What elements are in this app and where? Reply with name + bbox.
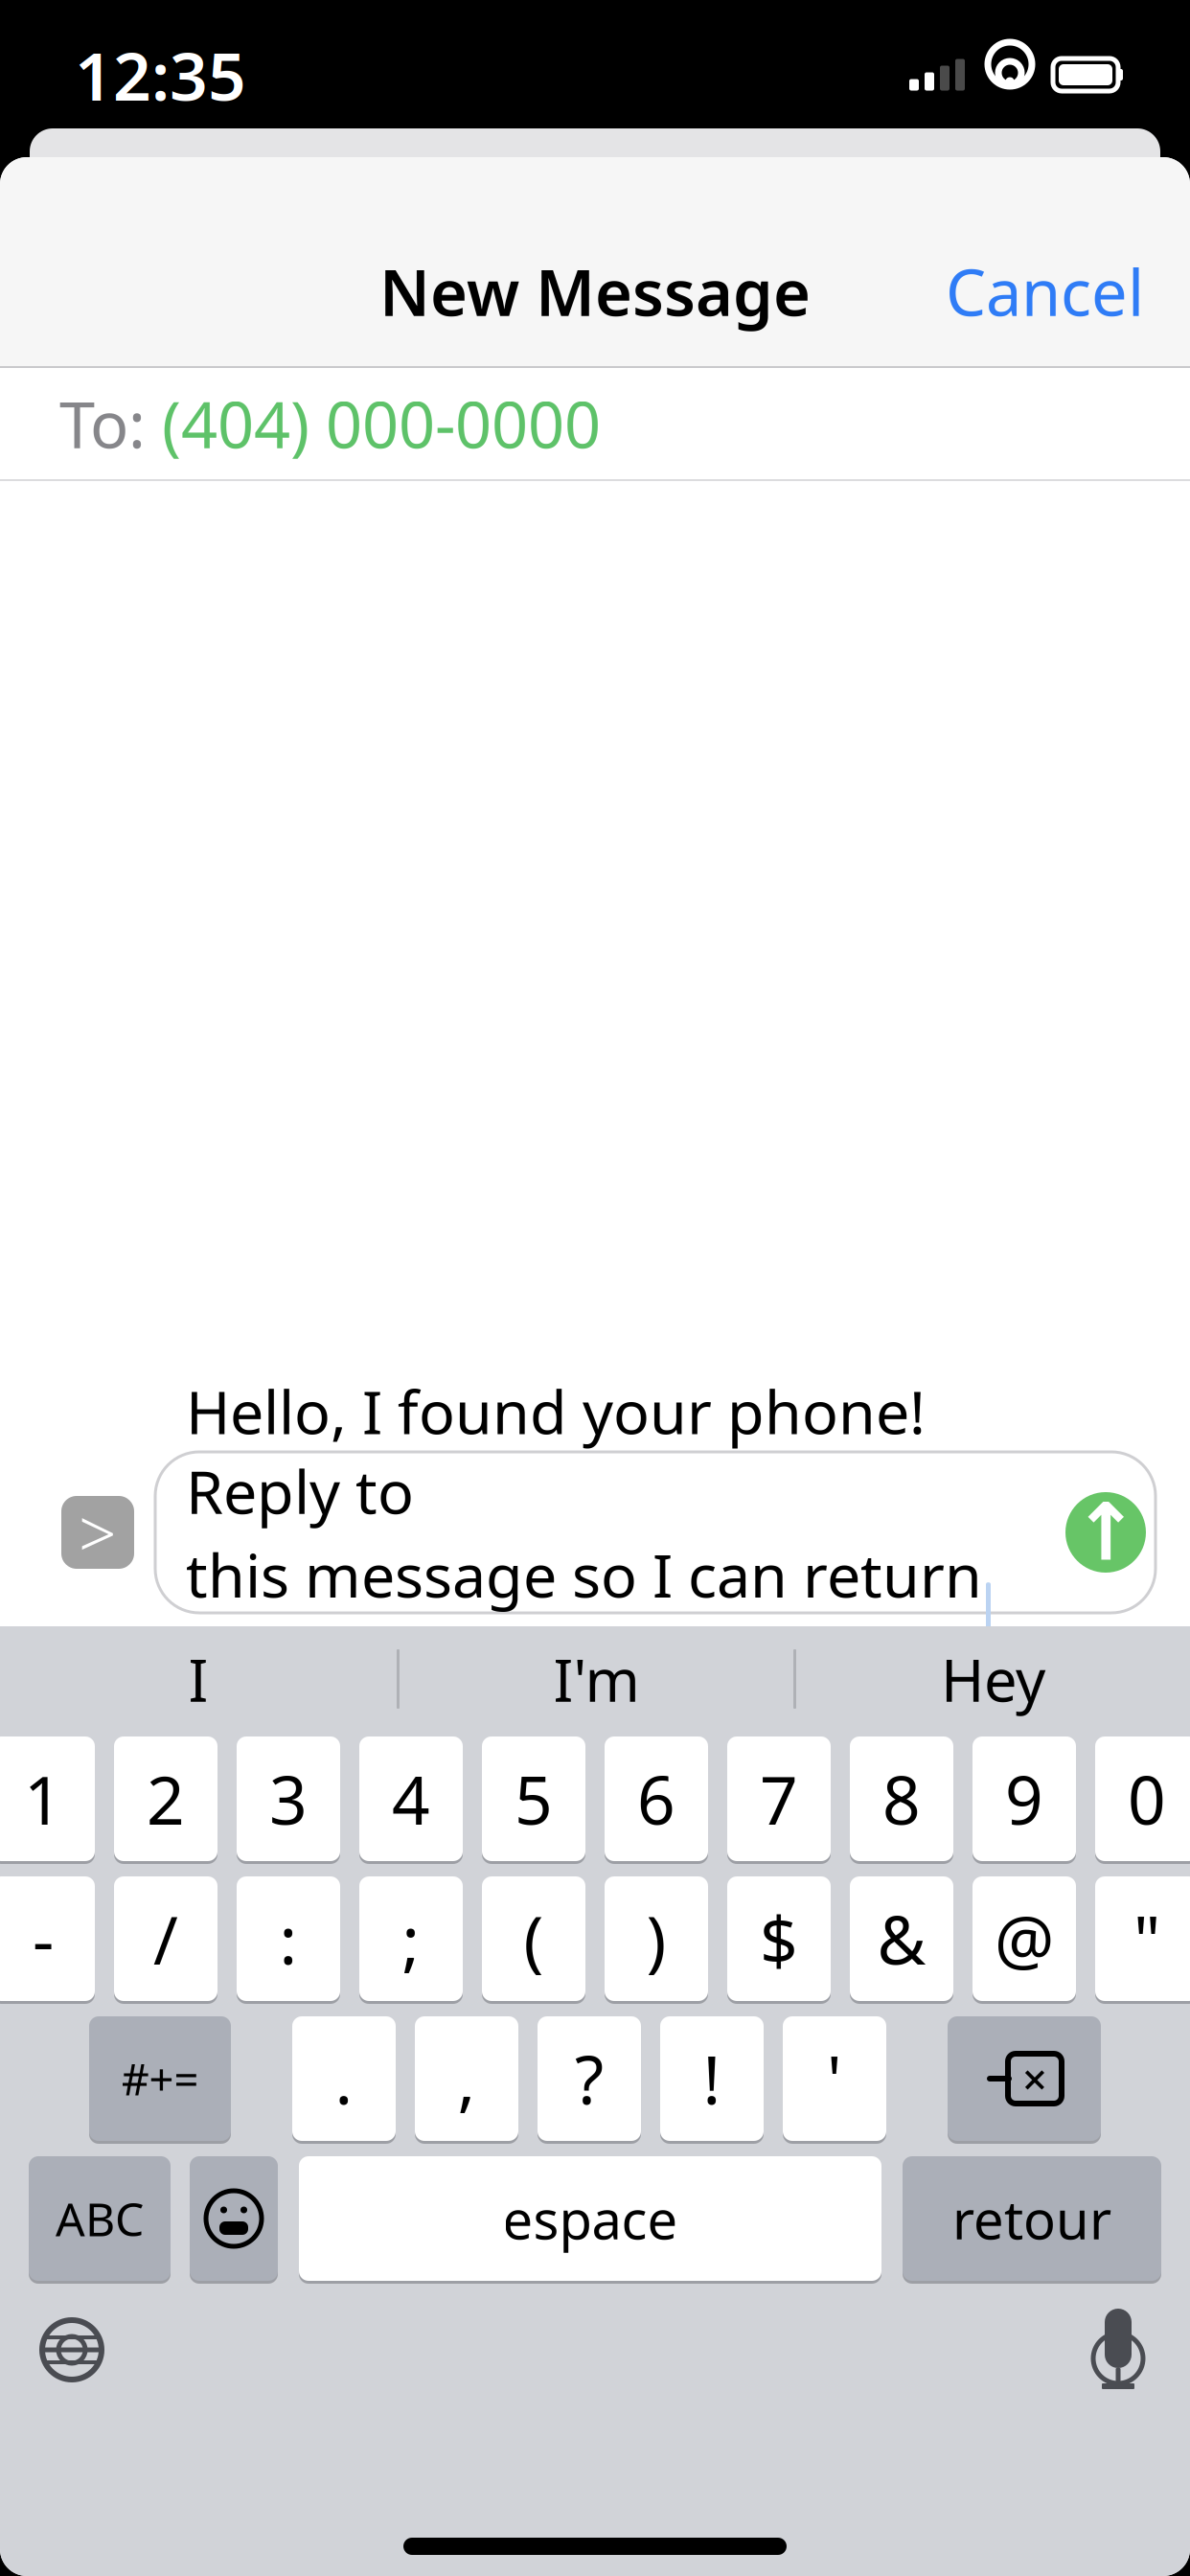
staticText: this message so I can return to you. — [186, 1534, 982, 1694]
button[interactable]: , — [415, 2013, 518, 2144]
staticText: Hello, I found your phone! Reply to — [186, 1371, 926, 1530]
staticText: ABC — [56, 2188, 144, 2249]
staticText: × — [1022, 2050, 1047, 2107]
button[interactable]: $ — [727, 1874, 831, 2004]
staticText: ; — [402, 1895, 420, 1983]
button[interactable]: #+= — [89, 2013, 231, 2144]
staticText: 4 — [392, 1755, 430, 1843]
staticText: 7 — [760, 1755, 798, 1843]
staticText: 8 — [882, 1755, 921, 1843]
staticText: #+= — [121, 2050, 199, 2107]
staticText: To: — [59, 381, 162, 466]
button[interactable]: 2 — [114, 1734, 217, 1864]
button[interactable]: Next keyboard — [19, 2297, 125, 2403]
button[interactable]: : — [237, 1874, 340, 2004]
button[interactable]: 3 — [237, 1734, 340, 1864]
staticText: & — [877, 1895, 926, 1983]
staticText: retour — [952, 2183, 1111, 2254]
button[interactable]: Emoji — [190, 2153, 278, 2284]
button[interactable]: Hey — [796, 1633, 1190, 1725]
button[interactable]: ABC — [29, 2153, 171, 2284]
button[interactable]: ( — [482, 1874, 585, 2004]
button[interactable]: 9 — [973, 1734, 1076, 1864]
button[interactable]: I'm — [400, 1633, 793, 1725]
staticText: 5 — [515, 1755, 553, 1843]
button[interactable]: Delete — [948, 2013, 1101, 2144]
staticText: (404) 000-0000 — [162, 381, 601, 466]
button[interactable]: & — [850, 1874, 953, 2004]
staticText: I — [188, 1640, 208, 1718]
staticText: 6 — [637, 1755, 675, 1843]
staticText: - — [33, 1895, 54, 1983]
button[interactable]: retour — [903, 2153, 1161, 2284]
staticText: 12:35 — [75, 31, 246, 119]
staticText: 0 — [1128, 1755, 1166, 1843]
staticText: 3 — [269, 1755, 308, 1843]
button[interactable]: Send — [1065, 1492, 1146, 1573]
button[interactable]: 6 — [605, 1734, 708, 1864]
button[interactable]: ! — [660, 2013, 764, 2144]
staticText: ! — [703, 2035, 721, 2123]
staticText: Cancel — [946, 249, 1144, 334]
button[interactable]: Cancel — [925, 235, 1165, 347]
staticText: / — [153, 1895, 178, 1983]
button[interactable]: Dictation — [1065, 2297, 1171, 2403]
button[interactable]: - — [0, 1874, 95, 2004]
button[interactable]: More apps — [61, 1496, 134, 1569]
staticText: espace — [503, 2183, 678, 2254]
button[interactable]: 7 — [727, 1734, 831, 1864]
staticText: New Message — [379, 249, 811, 334]
button[interactable]: . — [292, 2013, 396, 2144]
button[interactable]: ) — [605, 1874, 708, 2004]
button[interactable]: espace — [299, 2153, 881, 2284]
staticText: " — [1133, 1895, 1160, 1983]
button[interactable]: ? — [538, 2013, 641, 2144]
button[interactable]: 0 — [1095, 1734, 1190, 1864]
staticText: ) — [646, 1895, 666, 1983]
staticText: 1 — [24, 1755, 62, 1843]
button[interactable]: 8 — [850, 1734, 953, 1864]
staticText: ( — [524, 1895, 544, 1983]
button[interactable]: I — [0, 1633, 397, 1725]
button[interactable]: To: — [0, 368, 1190, 479]
staticText: . — [335, 2035, 353, 2123]
button[interactable]: 1 — [0, 1734, 95, 1864]
button[interactable]: / — [114, 1874, 217, 2004]
button[interactable]: 5 — [482, 1734, 585, 1864]
staticText: ↑ — [1073, 1487, 1139, 1577]
button[interactable]: @ — [973, 1874, 1076, 2004]
staticText: 9 — [1005, 1755, 1043, 1843]
button[interactable]: " — [1095, 1874, 1190, 2004]
staticText: > — [79, 1488, 117, 1577]
button[interactable]: ' — [783, 2013, 886, 2144]
button[interactable]: ; — [359, 1874, 463, 2004]
staticText: 2 — [147, 1755, 185, 1843]
staticText: $ — [760, 1895, 798, 1983]
staticText: ? — [575, 2035, 604, 2123]
staticText: @ — [995, 1895, 1054, 1983]
staticText: ' — [827, 2035, 842, 2123]
staticText: : — [279, 1895, 297, 1983]
staticText: Hey — [941, 1640, 1045, 1718]
staticText: , — [458, 2035, 476, 2123]
staticText: I'm — [553, 1640, 640, 1718]
button[interactable]: 4 — [359, 1734, 463, 1864]
